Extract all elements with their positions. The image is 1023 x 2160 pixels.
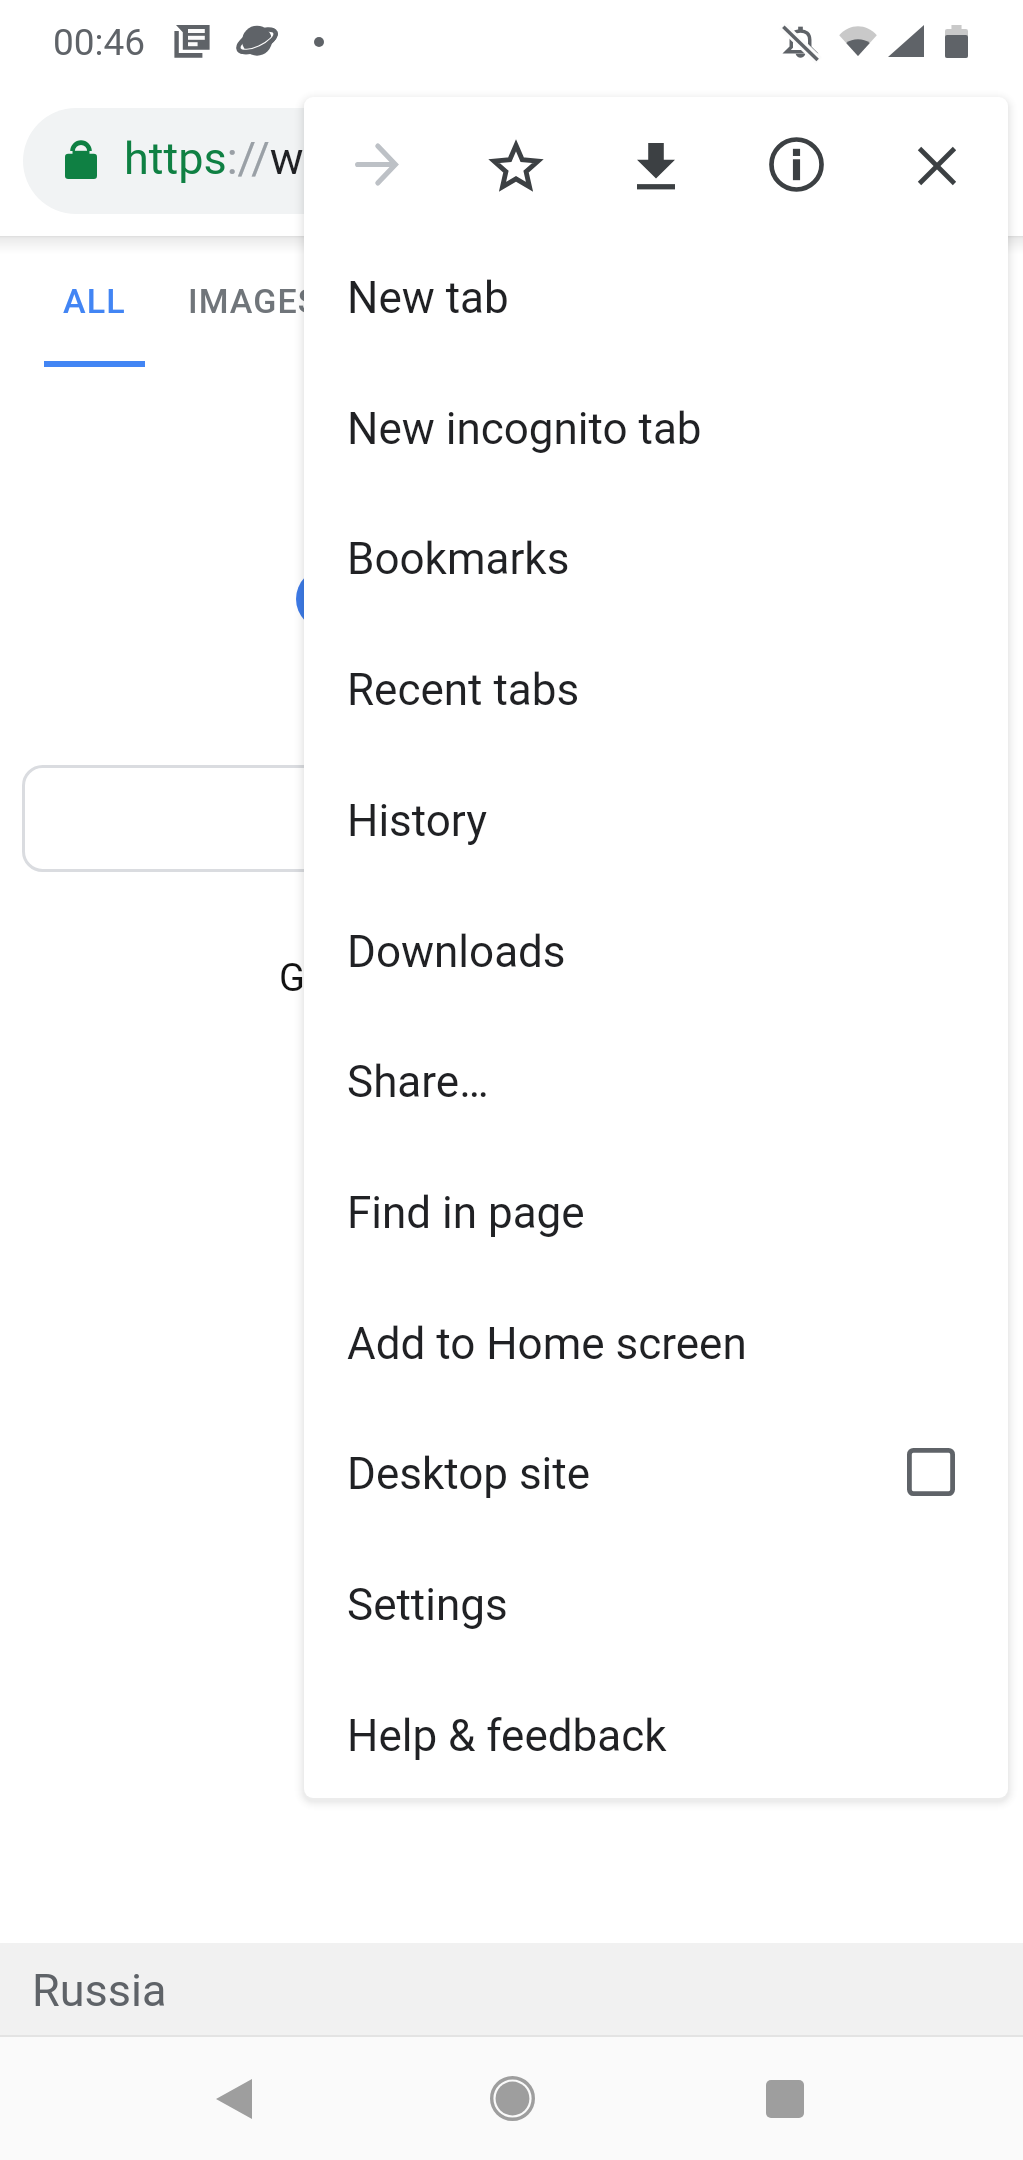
- button[interactable]: New incognito tab: [304, 361, 1008, 492]
- staticText: IMAGES: [188, 281, 320, 321]
- button[interactable]: ALL: [20, 252, 168, 372]
- staticText: Settings: [347, 1579, 508, 1631]
- staticText: Downloads: [347, 926, 566, 978]
- button[interactable]: Find in page: [304, 1145, 1008, 1276]
- staticText: Russia: [32, 1964, 167, 2017]
- button[interactable]: Close: [877, 100, 997, 231]
- staticText: Bookmarks: [347, 533, 570, 585]
- staticText: Share…: [347, 1056, 489, 1108]
- staticText: History: [347, 795, 487, 847]
- button[interactable]: Recent tabs: [304, 622, 1008, 753]
- staticText: Help & feedback: [347, 1710, 667, 1762]
- button[interactable]: Bookmarks: [304, 491, 1008, 622]
- button[interactable]: Downloads: [304, 884, 1008, 1015]
- button[interactable]: Russia: [0, 1943, 1023, 2035]
- button[interactable]: Settings: [304, 1537, 1008, 1668]
- button[interactable]: New tab: [304, 230, 1008, 361]
- staticText: Find in page: [347, 1187, 585, 1239]
- staticText: https://www.google.com: [124, 132, 618, 185]
- staticText: 00:46: [53, 21, 146, 64]
- button[interactable]: https://www.google.com: [23, 108, 783, 214]
- button[interactable]: Desktop site: [304, 1406, 1008, 1537]
- button[interactable]: Back: [174, 2037, 294, 2160]
- button[interactable]: Bookmark: [456, 100, 576, 231]
- button[interactable]: Download: [596, 101, 716, 232]
- staticText: Desktop site: [347, 1448, 591, 1500]
- staticText: New incognito tab: [347, 403, 702, 455]
- staticText: Recent tabs: [347, 664, 580, 716]
- button[interactable]: Add to Home screen: [304, 1276, 1008, 1407]
- staticText: Add to Home screen: [347, 1318, 747, 1370]
- button[interactable]: IMAGES: [168, 252, 368, 372]
- staticText: New tab: [347, 272, 509, 324]
- button[interactable]: Share…: [304, 1014, 1008, 1145]
- button[interactable]: Recent apps: [725, 2037, 845, 2160]
- staticText: ALL: [63, 281, 126, 321]
- button[interactable]: History: [304, 753, 1008, 884]
- staticText: G: [279, 956, 305, 1001]
- button[interactable]: Home: [452, 2037, 572, 2160]
- button[interactable]: Page info: [736, 99, 856, 230]
- button[interactable]: Forward: [316, 99, 436, 230]
- button[interactable]: Help & feedback: [304, 1668, 1008, 1798]
